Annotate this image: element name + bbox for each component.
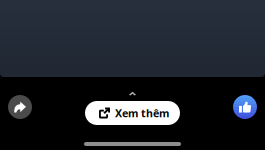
staticText: Xem thêm	[115, 106, 169, 120]
button[interactable]: Xem thêm	[85, 101, 180, 125]
button[interactable]: Like	[233, 95, 257, 119]
button[interactable]: Share	[8, 95, 32, 119]
